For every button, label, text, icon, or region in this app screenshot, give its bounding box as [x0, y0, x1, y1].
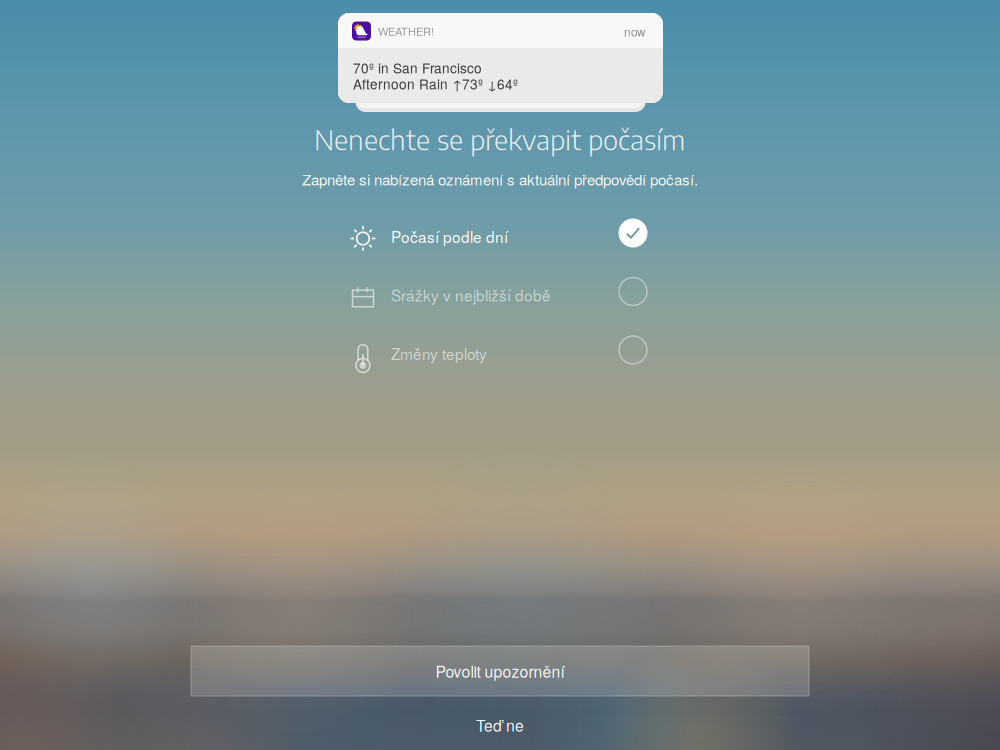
- staticText: Zapněte si nabízená oznámení s aktuální …: [302, 168, 698, 190]
- button[interactable]: Srážky v nejbližší době: [340, 262, 649, 320]
- staticText: Afternoon Rain ↑73º ↓64º: [353, 74, 518, 93]
- staticText: WEATHER!: [378, 23, 434, 39]
- button[interactable]: Povolit upozornění: [191, 646, 809, 696]
- button[interactable]: Změny teploty: [340, 320, 649, 379]
- button[interactable]: Teď ne: [420, 708, 580, 742]
- staticText: now: [624, 23, 645, 40]
- staticText: Teď ne: [476, 714, 524, 736]
- staticText: Srážky v nejbližší době: [391, 284, 551, 306]
- staticText: Počasí podle dní: [391, 225, 508, 247]
- staticText: Změny teploty: [391, 342, 487, 364]
- staticText: Nenechte se překvapit počasím: [314, 122, 685, 156]
- staticText: Povolit upozornění: [435, 660, 564, 682]
- button[interactable]: Počasí podle dní: [340, 203, 649, 262]
- staticText: 70º in San Francisco: [353, 58, 482, 77]
